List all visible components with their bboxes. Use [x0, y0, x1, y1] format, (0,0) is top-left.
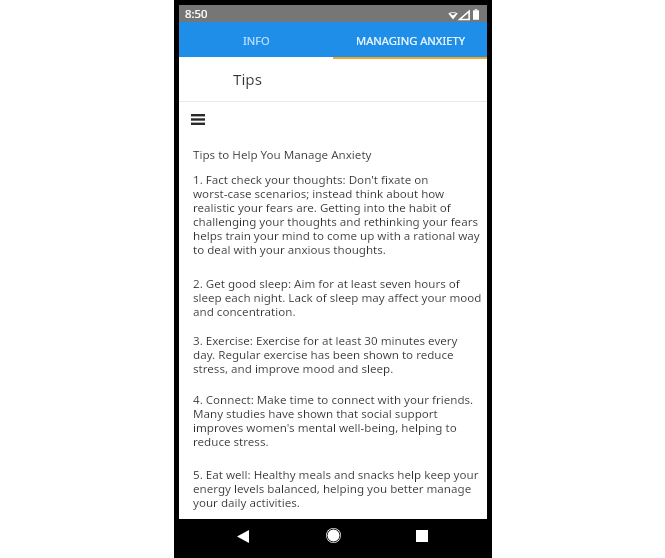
button[interactable]: Recents	[412, 526, 432, 546]
staticText: 4. Connect: Make time to connect with yo…	[193, 392, 474, 449]
staticText: 2. Get good sleep: Aim for at least seve…	[193, 276, 482, 319]
staticText: 1. Fact check your thoughts: Don't fixat…	[193, 172, 480, 257]
button[interactable]: INFO	[179, 22, 333, 57]
button[interactable]: MANAGING ANXIETY	[333, 22, 487, 57]
button[interactable]: Back	[233, 526, 253, 547]
staticText: 8:50	[185, 6, 208, 21]
staticText: 5. Eat well: Healthy meals and snacks he…	[193, 467, 479, 510]
staticText: INFO	[243, 33, 270, 48]
staticText: MANAGING ANXIETY	[356, 33, 465, 48]
staticText: Tips to Help You Manage Anxiety	[193, 147, 372, 163]
staticText: 3. Exercise: Exercise for at least 30 mi…	[193, 333, 458, 376]
staticText: Tips	[233, 69, 262, 90]
button[interactable]: Home	[322, 524, 344, 546]
button[interactable]: Menu	[191, 114, 205, 125]
